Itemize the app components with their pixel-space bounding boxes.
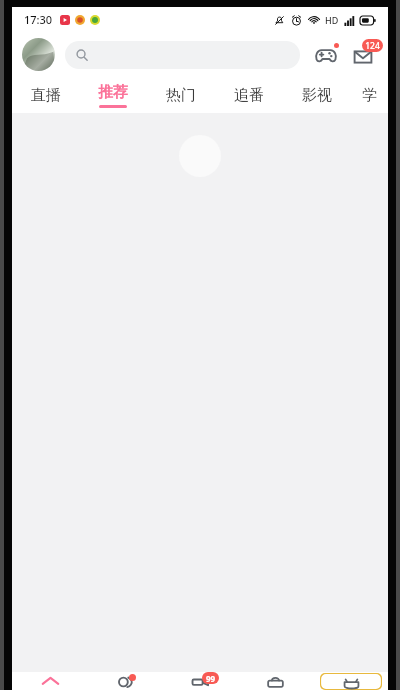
button[interactable]: Games: [312, 41, 340, 69]
button[interactable]: Mall: [238, 672, 313, 690]
button[interactable]: Mine: [313, 672, 388, 690]
staticText: 追番: [234, 86, 264, 105]
staticText: 推荐: [98, 83, 128, 102]
button[interactable]: Upload: [163, 672, 238, 690]
staticText: 影视: [302, 86, 332, 105]
button[interactable]: Profile: [22, 38, 55, 71]
staticText: 学: [362, 86, 377, 105]
staticText: HD: [325, 14, 339, 26]
button[interactable]: Messages: [348, 40, 378, 70]
staticText: 17:30: [24, 12, 53, 27]
staticText: 热门: [166, 86, 196, 105]
button[interactable]: [65, 41, 300, 69]
button[interactable]: 影视: [283, 77, 351, 113]
staticText: 直播: [31, 86, 61, 105]
staticText: 124: [365, 40, 380, 52]
button[interactable]: 直播: [12, 77, 79, 113]
button[interactable]: 热门: [147, 77, 215, 113]
button[interactable]: Home: [12, 672, 88, 690]
button[interactable]: 学: [351, 77, 388, 113]
staticText: 99: [206, 673, 216, 684]
button[interactable]: 追番: [215, 77, 283, 113]
button[interactable]: Dynamic: [88, 672, 163, 690]
button[interactable]: 推荐: [79, 77, 147, 113]
